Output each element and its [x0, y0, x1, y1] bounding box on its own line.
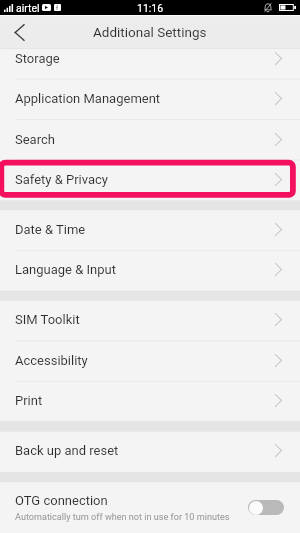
staticText: 11:16 — [137, 2, 164, 14]
button[interactable]: Language & Input — [0, 249, 300, 289]
button[interactable]: Safety & Privacy — [0, 159, 300, 199]
staticText: Storage — [15, 51, 60, 66]
button[interactable]: Accessibility — [0, 340, 300, 380]
staticText: Language & Input — [15, 262, 116, 277]
button[interactable]: Back up and reset — [0, 430, 300, 470]
button[interactable]: Storage — [0, 38, 300, 78]
staticText: Application Management — [15, 91, 161, 106]
staticText: Back up and reset — [15, 443, 119, 458]
staticText: airtel — [16, 2, 40, 14]
button[interactable]: Search — [0, 119, 300, 159]
button[interactable]: Back — [1, 15, 37, 49]
staticText: Safety & Privacy — [15, 172, 108, 187]
staticText: Search — [15, 132, 55, 147]
staticText: Automatically turn off when not in use f… — [15, 512, 230, 523]
staticText: Print — [15, 393, 43, 408]
staticText: Date & Time — [15, 222, 86, 237]
staticText: Additional Settings — [93, 24, 207, 40]
staticText: OTG connection — [15, 493, 108, 508]
button[interactable]: Application Management — [0, 78, 300, 118]
button[interactable]: OTG connection — [0, 482, 300, 533]
button[interactable]: Print — [0, 380, 300, 420]
staticText: SIM Toolkit — [15, 312, 80, 327]
button[interactable]: Date & Time — [0, 209, 300, 249]
staticText: f — [56, 4, 59, 11]
button[interactable]: OTG connection toggle — [248, 500, 284, 515]
button[interactable]: SIM Toolkit — [0, 299, 300, 339]
staticText: Accessibility — [15, 353, 88, 368]
